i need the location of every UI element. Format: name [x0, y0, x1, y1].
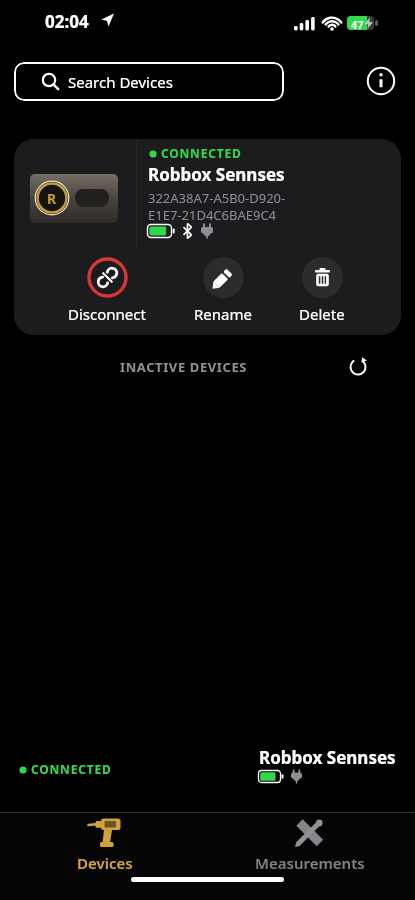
staticText: Measurements — [255, 853, 365, 873]
button[interactable]: CONNECTED — [0, 745, 415, 812]
button[interactable]: Devices — [55, 817, 155, 873]
staticText: E1E7-21D4C6BAE9C4 — [148, 206, 277, 224]
staticText: CONNECTED — [161, 145, 242, 161]
staticText: CONNECTED — [31, 761, 112, 777]
button[interactable]: Disconnect — [57, 257, 157, 324]
button[interactable]: R — [14, 139, 401, 335]
staticText: Rename — [194, 304, 252, 324]
staticText: R — [47, 189, 57, 208]
staticText: Robbox Sennses — [259, 746, 396, 769]
button[interactable]: Rename — [173, 257, 273, 324]
button[interactable]: Delete — [272, 257, 372, 324]
staticText: Devices — [77, 853, 133, 873]
staticText: Delete — [299, 304, 345, 324]
button[interactable] — [345, 354, 371, 380]
staticText: INACTIVE DEVICES — [120, 358, 248, 376]
staticText: 02:04 — [45, 10, 89, 33]
staticText: 47 — [351, 17, 364, 30]
button[interactable] — [364, 64, 398, 98]
staticText: 322A38A7-A5B0-D920- — [148, 189, 286, 207]
button[interactable]: Measurements — [240, 817, 380, 873]
staticText: Robbox Sennses — [148, 163, 285, 186]
staticText: Search Devices — [68, 72, 173, 92]
staticText: Disconnect — [68, 304, 146, 324]
button[interactable]: Search Devices — [14, 62, 284, 101]
